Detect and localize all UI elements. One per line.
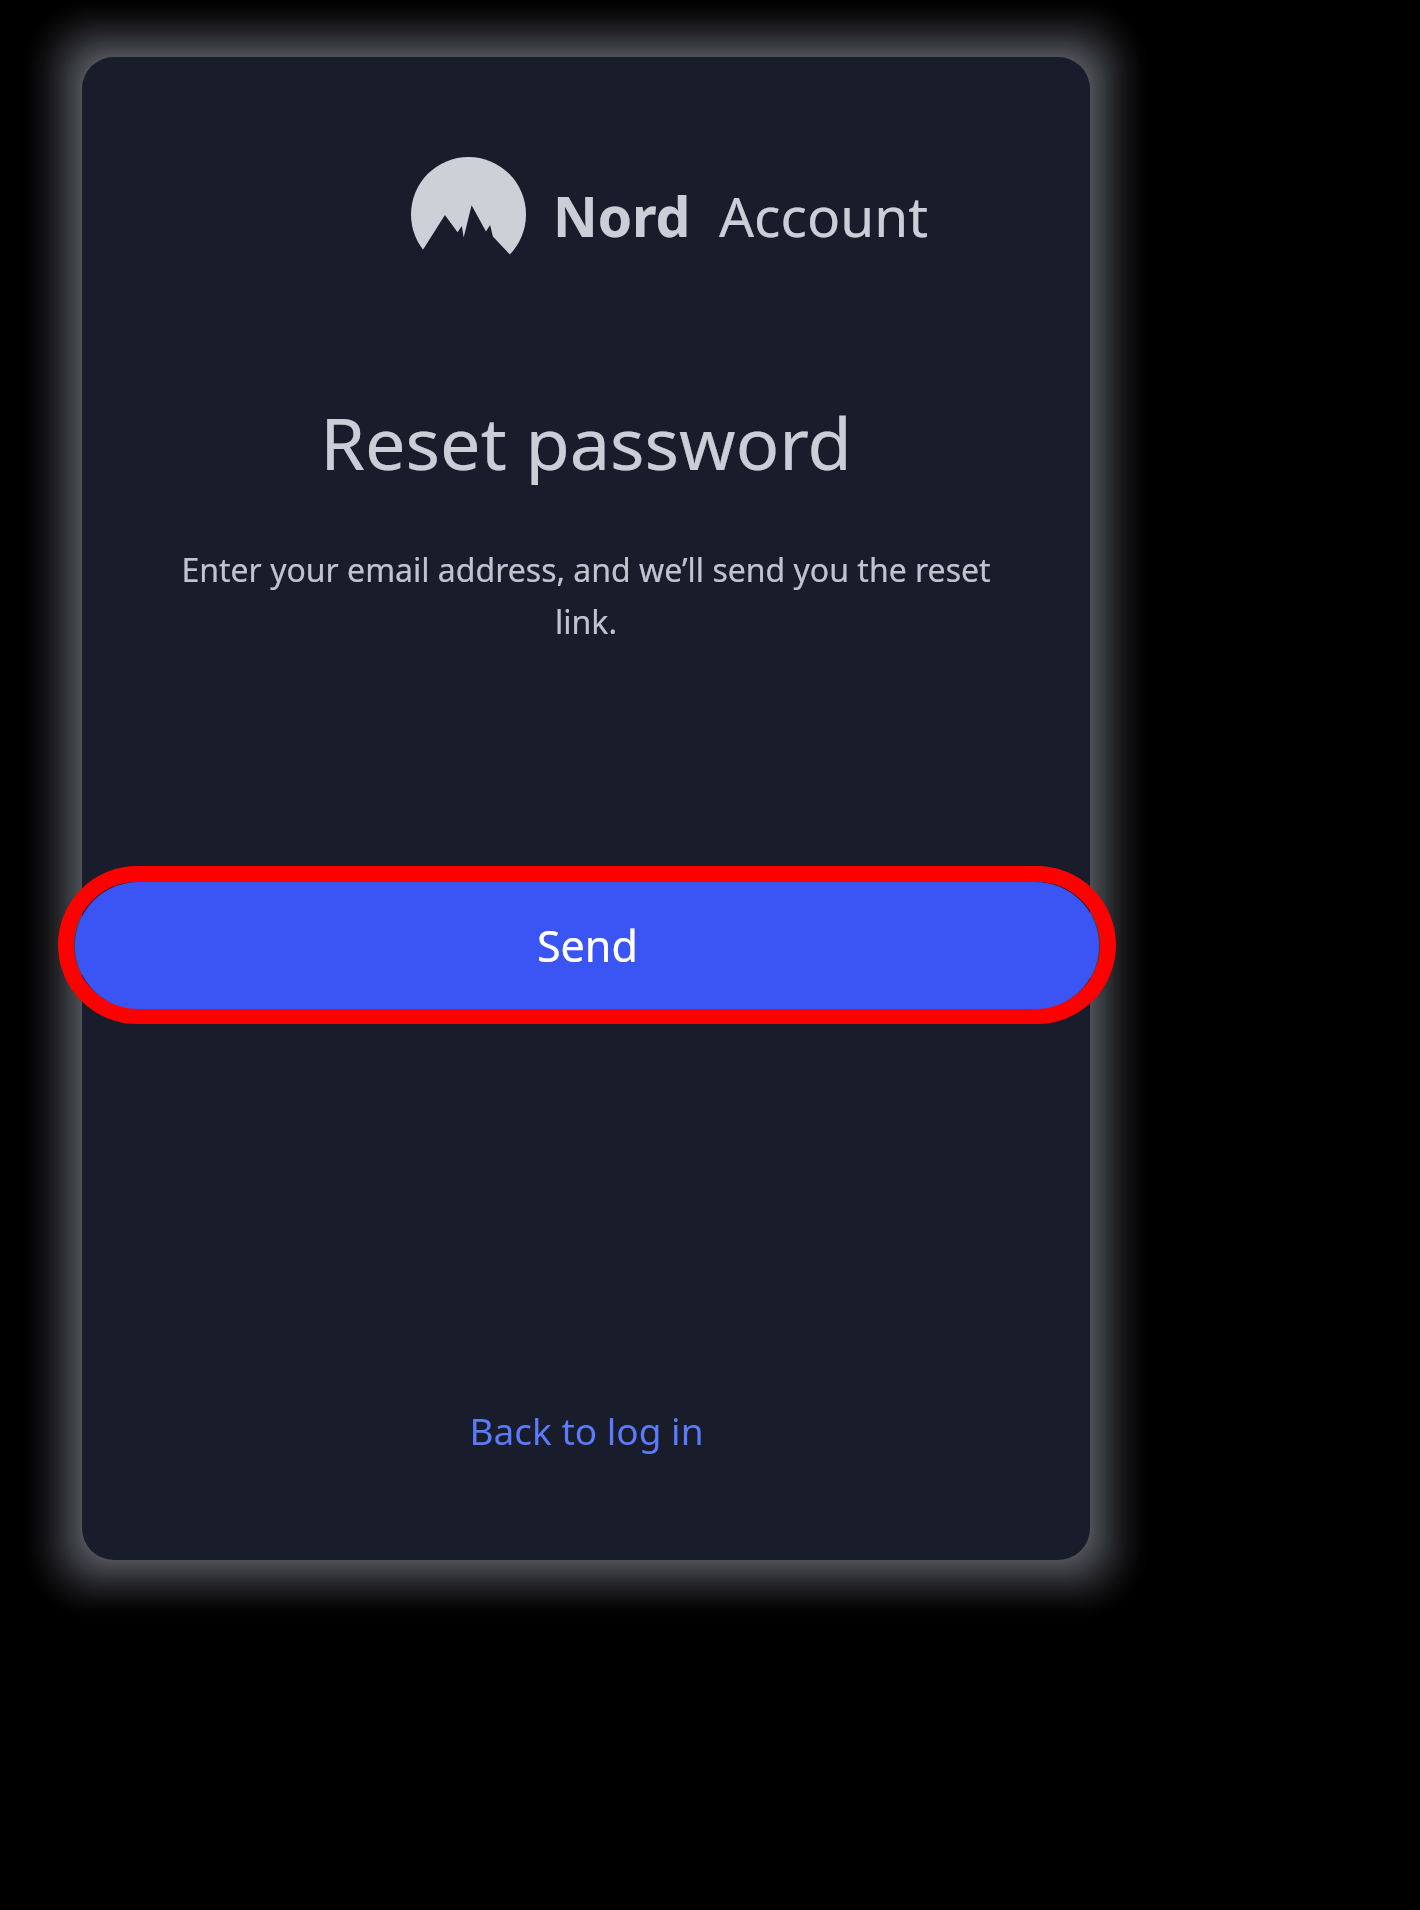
- staticText: Send: [537, 916, 638, 975]
- staticText: Nord Account: [553, 178, 928, 253]
- button[interactable]: Send: [75, 882, 1099, 1009]
- button[interactable]: Back to log in: [438, 1398, 734, 1462]
- staticText: Back to log in: [469, 1405, 704, 1455]
- other: Nord Account logo: [411, 157, 526, 272]
- staticText: Reset password: [320, 393, 852, 485]
- staticText: Enter your email address, and we’ll send…: [165, 548, 1007, 643]
- button[interactable]: Email address: [163, 868, 1049, 1015]
